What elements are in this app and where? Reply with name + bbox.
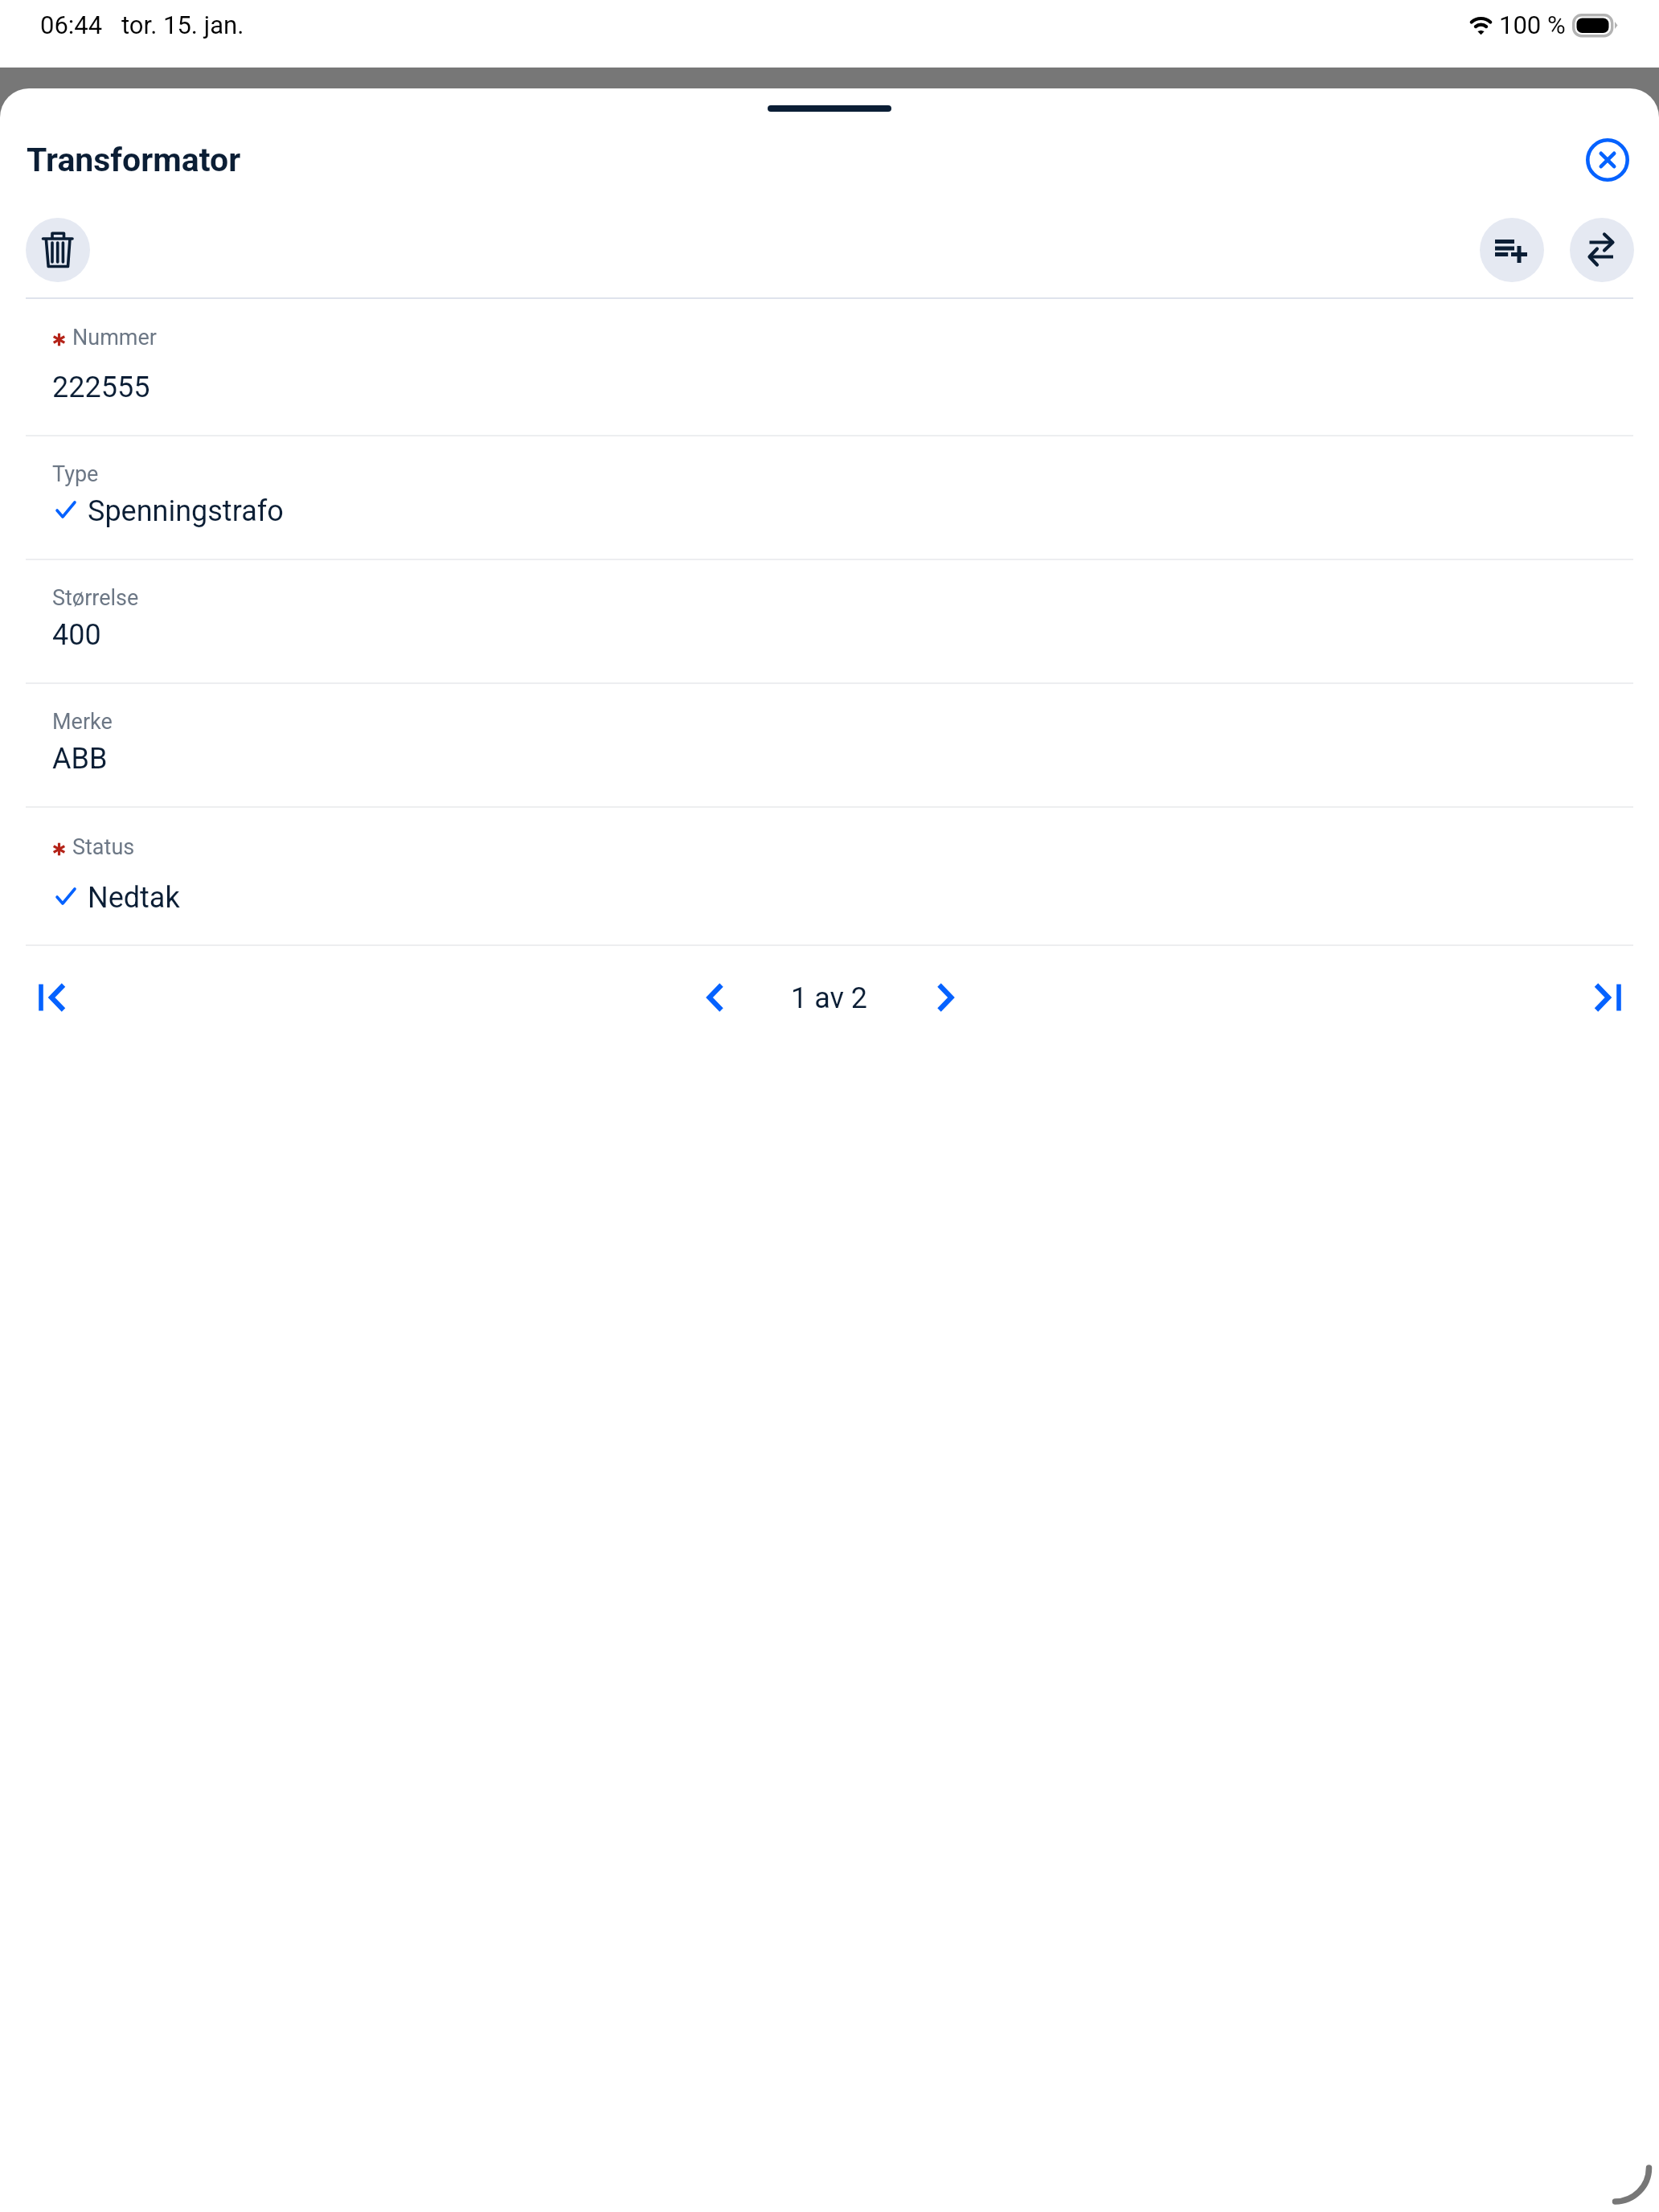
staticText: 222555 (52, 371, 150, 404)
staticText: Nummer (72, 325, 157, 350)
button[interactable]: Størrelse: 400 (0, 559, 1659, 682)
staticText: 1 av 2 (791, 981, 868, 1015)
button[interactable]: Legg til rad (1480, 218, 1544, 282)
button[interactable]: Neste (913, 965, 977, 1030)
button[interactable]: Slett (26, 218, 90, 282)
button[interactable]: Merke: ABB (0, 682, 1659, 806)
staticText: Størrelse (52, 585, 139, 611)
button[interactable]: Lukk (1572, 125, 1643, 195)
button[interactable]: Forrige (683, 965, 748, 1030)
staticText: 06:44 (40, 10, 103, 39)
staticText: Transformator (27, 141, 241, 179)
button[interactable]: Nummer: 222555 (0, 297, 1659, 435)
button[interactable]: Siste (1574, 965, 1638, 1030)
staticText: tor. 15. jan. (121, 10, 244, 39)
staticText: Type (52, 461, 99, 487)
staticText: Spenningstrafo (88, 494, 284, 528)
button[interactable]: Første (22, 965, 86, 1030)
staticText: 400 (52, 618, 101, 652)
button[interactable]: Type: Spenningstrafo (0, 435, 1659, 559)
staticText: Nedtak (88, 881, 180, 915)
button[interactable]: Bytt (1570, 218, 1634, 282)
staticText: 100 % (1499, 10, 1566, 39)
staticText: ABB (52, 742, 108, 776)
staticText: Status (72, 834, 135, 860)
button[interactable]: Status: Nedtak (0, 806, 1659, 944)
staticText: Merke (52, 709, 113, 735)
